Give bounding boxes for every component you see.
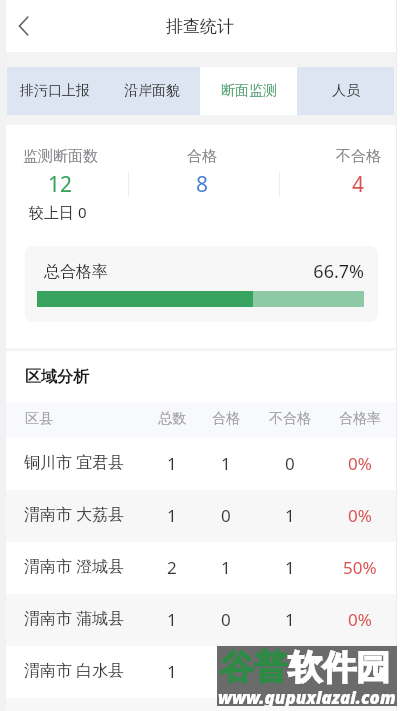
staticText: 软件园 [288, 646, 390, 689]
staticText: www.gupuxlazai.com [218, 686, 396, 706]
staticText: 铜川市 宜君县 [24, 451, 125, 473]
staticText: 12 [48, 170, 73, 199]
button[interactable]: 渭南市 白水县 [0, 646, 400, 698]
staticText: 人员 [332, 82, 360, 100]
staticText: 0% [348, 504, 372, 527]
staticText: 8 [196, 170, 209, 199]
staticText: 渭南市 大荔县 [24, 503, 125, 525]
staticText: 1 [285, 504, 295, 527]
staticText: 排污口上报 [20, 82, 90, 100]
staticText: 区域分析 [25, 367, 89, 387]
staticText: 总数 [158, 410, 186, 428]
staticText: 谷普 [220, 646, 288, 689]
staticText: 50% [343, 556, 377, 579]
button[interactable]: 渭南市 澄城县 [0, 542, 400, 594]
staticText: 渭南市 澄城县 [24, 555, 125, 577]
staticText: 排查统计 [166, 16, 234, 37]
staticText: 总合格率 [44, 262, 108, 282]
staticText: 不合格 [336, 147, 381, 166]
button[interactable]: 断面监测 [200, 67, 297, 115]
staticText: 1 [167, 504, 177, 527]
staticText: 0 [221, 504, 231, 527]
staticText: 0% [348, 452, 372, 475]
staticText: 1 [285, 608, 295, 631]
staticText: 2 [167, 556, 177, 579]
staticText: 不合格 [269, 410, 311, 428]
staticText: 区县 [25, 410, 53, 428]
staticText: 4 [352, 170, 365, 199]
staticText: 1 [221, 556, 231, 579]
staticText: 1 [221, 452, 231, 475]
button[interactable]: 铜川市 宜君县 [0, 438, 400, 490]
staticText: 0 [221, 608, 231, 631]
staticText: 合格 [187, 147, 217, 166]
staticText: 断面监测 [221, 82, 277, 100]
button[interactable]: 排污口上报 [7, 67, 103, 115]
staticText: 0% [348, 608, 372, 631]
staticText: 沿岸面貌 [124, 82, 180, 100]
staticText: 1 [167, 452, 177, 475]
staticText: 渭南市 白水县 [24, 659, 125, 681]
staticText: 1 [167, 660, 177, 683]
staticText: 较上日 0 [29, 202, 87, 222]
staticText: 合格 [212, 410, 240, 428]
staticText: 监测断面数 [23, 147, 98, 166]
button[interactable]: 沿岸面貌 [103, 67, 200, 115]
button[interactable]: 渭南市 蒲城县 [0, 594, 400, 646]
staticText: 0 [285, 452, 295, 475]
staticText: 合格率 [339, 410, 381, 428]
button[interactable]: Back [3, 0, 45, 52]
staticText: 1 [167, 608, 177, 631]
staticText: 1 [285, 556, 295, 579]
button[interactable]: 人员 [297, 67, 394, 115]
button[interactable]: 渭南市 大荔县 [0, 490, 400, 542]
staticText: 渭南市 蒲城县 [24, 607, 125, 629]
staticText: 66.7% [209, 259, 364, 284]
